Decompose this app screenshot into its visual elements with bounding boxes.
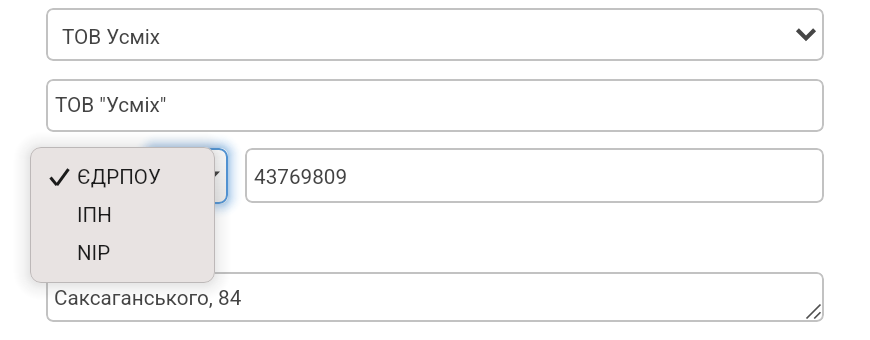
button[interactable]: 43769809 bbox=[245, 148, 824, 203]
button[interactable]: Саксаганського, 84 bbox=[46, 272, 824, 322]
staticText: ТОВ Усміх bbox=[62, 25, 161, 49]
staticText: 43769809 bbox=[254, 165, 348, 189]
staticText: NIP bbox=[77, 241, 111, 265]
button[interactable]: ТОВ Усміх bbox=[46, 8, 824, 61]
other: Choose code type bbox=[203, 167, 220, 184]
button[interactable]: ІПН bbox=[30, 196, 214, 234]
button[interactable]: ТОВ "Усміх" bbox=[46, 79, 824, 132]
staticText: ТОВ "Усміх" bbox=[55, 93, 167, 117]
other: Open dropdown bbox=[794, 22, 818, 46]
button[interactable]: Choose code type bbox=[148, 148, 228, 204]
button[interactable]: ЄДРПОУ bbox=[30, 158, 214, 196]
staticText: ЄДРПОУ bbox=[77, 165, 161, 189]
staticText: Саксаганського, 84 bbox=[54, 286, 242, 310]
other: Resize bbox=[806, 304, 821, 319]
button[interactable]: NIP bbox=[30, 234, 214, 272]
staticText: ІПН bbox=[77, 203, 112, 227]
